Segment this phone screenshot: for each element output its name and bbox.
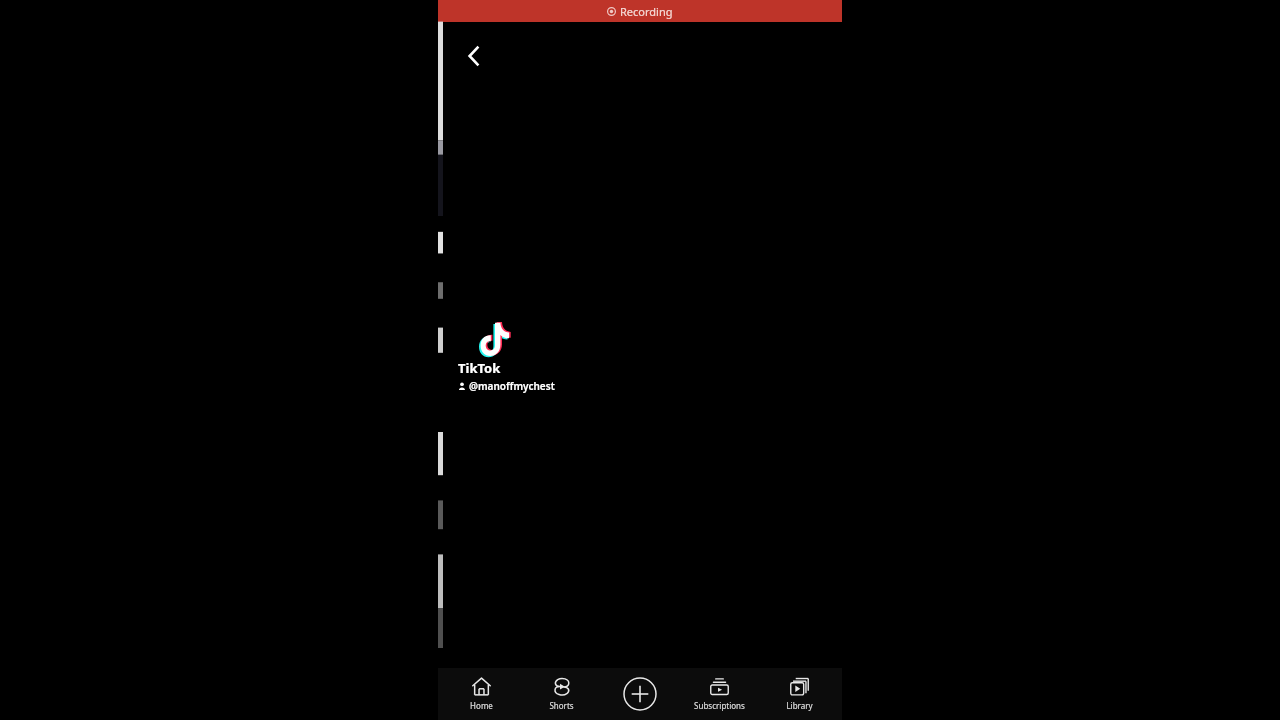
button[interactable]: Shorts (525, 673, 597, 715)
button[interactable]: Subscriptions (683, 673, 755, 715)
staticText: Home (470, 700, 493, 711)
staticText: Library (786, 700, 813, 711)
button[interactable]: Home (445, 673, 517, 715)
staticText: Subscriptions (694, 700, 745, 711)
staticText: @manoffmychest (469, 379, 555, 393)
button[interactable]: Back (454, 36, 494, 76)
staticText: Recording (620, 4, 673, 19)
button[interactable]: Library (763, 673, 835, 715)
button[interactable]: Create (604, 677, 676, 711)
staticText: TikTok (458, 359, 501, 377)
staticText: Shorts (549, 700, 574, 711)
